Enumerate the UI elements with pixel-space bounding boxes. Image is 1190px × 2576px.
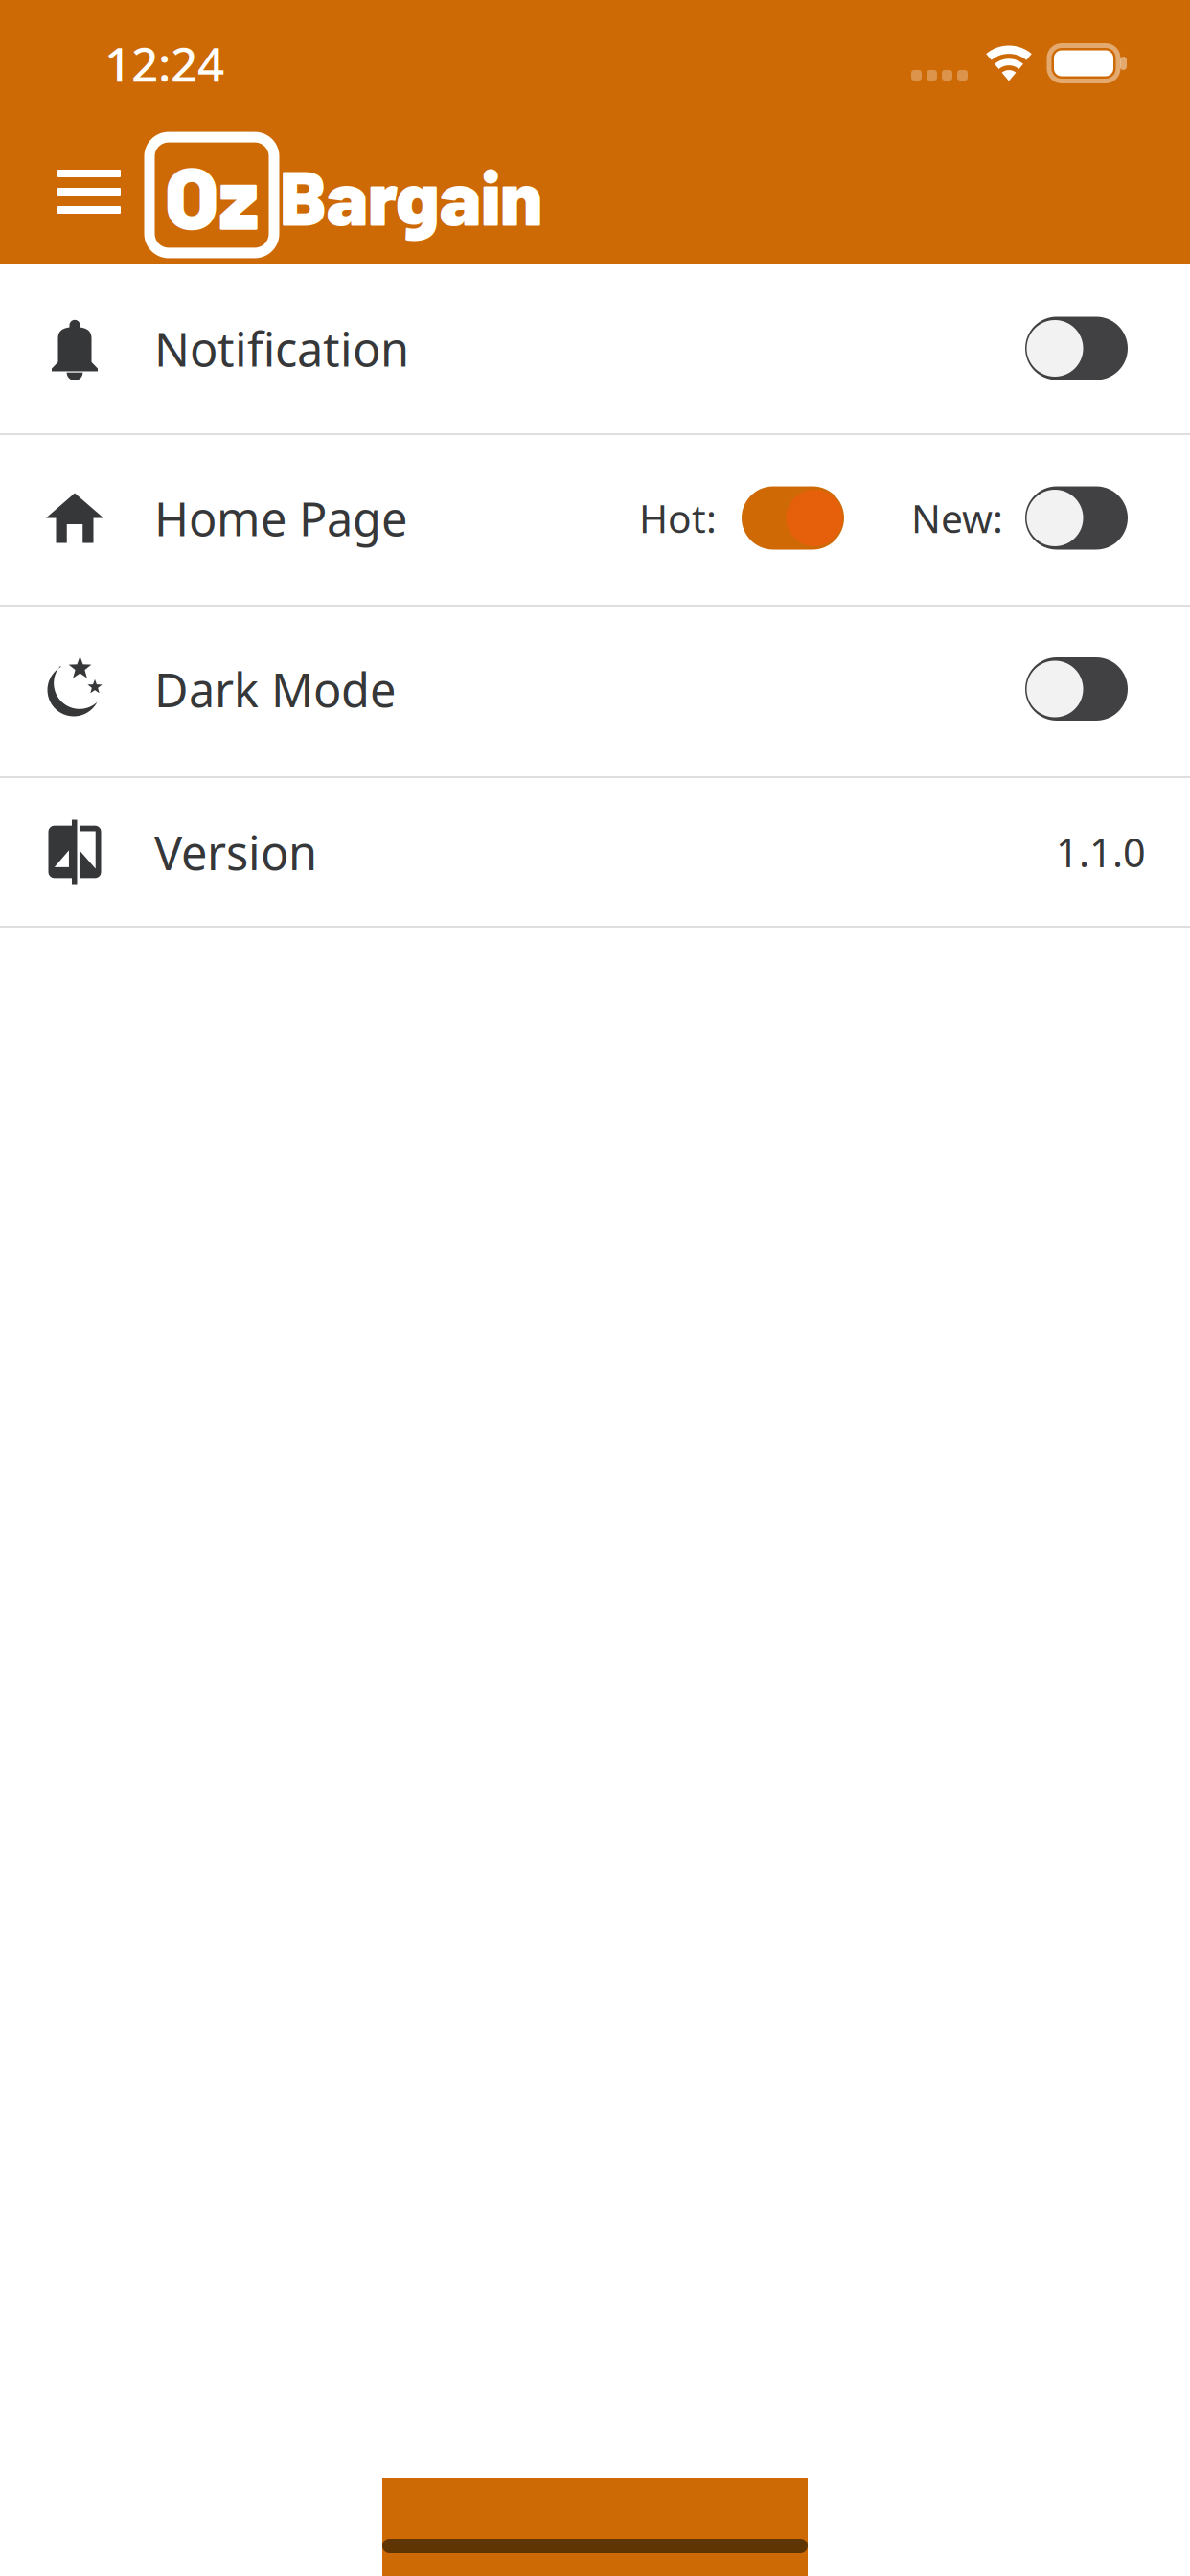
- button[interactable]: Notification: [0, 264, 1190, 435]
- button[interactable]: Version: [0, 778, 1190, 928]
- staticText: Hot:: [639, 491, 717, 545]
- staticText: New:: [911, 491, 1003, 545]
- button[interactable]: Dark Mode: [0, 607, 1190, 778]
- button[interactable]: Open menu: [0, 126, 149, 264]
- staticText: Bargain: [280, 149, 542, 241]
- staticText: Oz: [165, 143, 260, 247]
- staticText: Dark Mode: [154, 657, 396, 721]
- button[interactable]: Home Page: [0, 435, 1190, 607]
- staticText: Version: [154, 820, 317, 884]
- staticText: Notification: [154, 317, 409, 380]
- staticText: Home Page: [154, 486, 407, 550]
- staticText: 1.1.0: [1056, 825, 1146, 879]
- staticText: 12:24: [104, 31, 224, 95]
